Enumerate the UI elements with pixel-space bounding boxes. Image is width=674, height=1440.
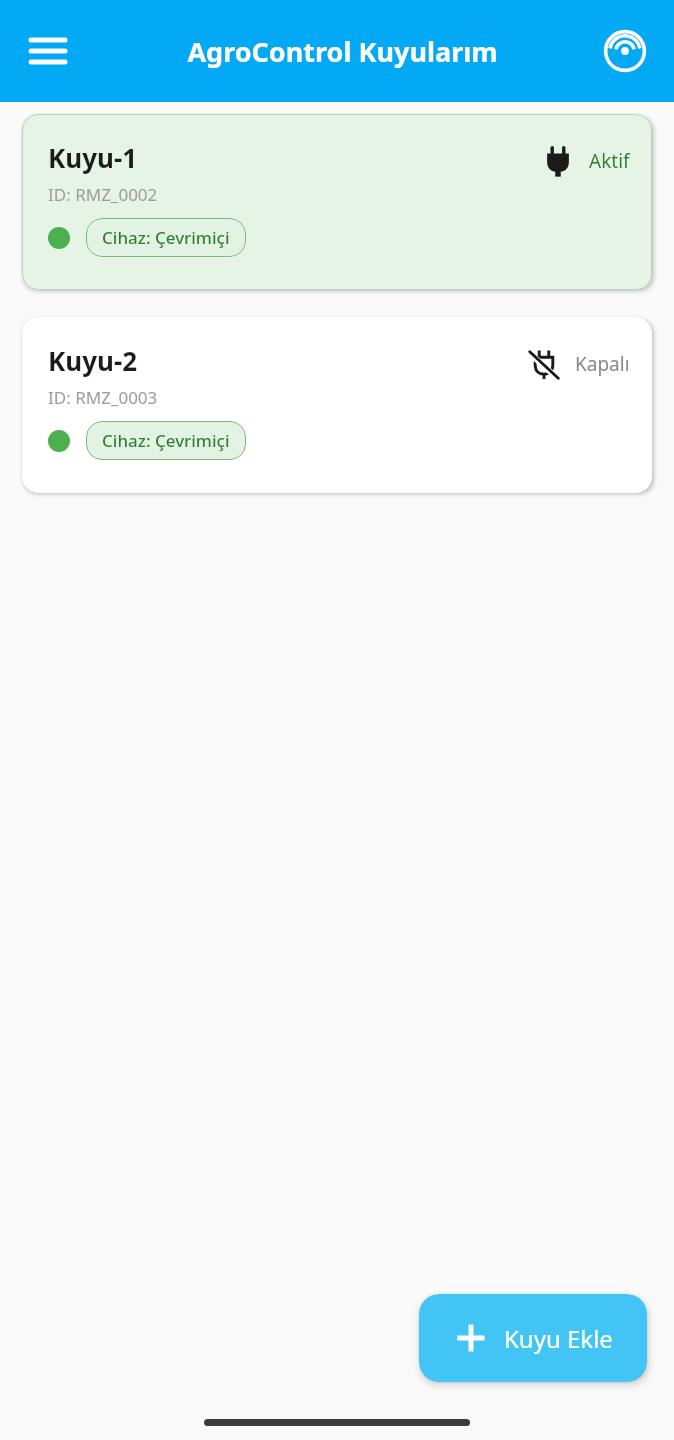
button[interactable]: Aktif [22,114,652,290]
button[interactable]: Cihaz: Çevrimiçi [86,218,246,257]
staticText: Aktif [589,148,630,174]
staticText: ID: RMZ_0002 [48,183,158,206]
staticText: ID: RMZ_0003 [48,386,158,409]
staticText: Kuyu-1 [48,140,138,175]
button[interactable]: Connection status [594,20,656,82]
staticText: AgroControl Kuyularım [187,33,498,70]
staticText: Cihaz: Çevrimiçi [102,429,230,452]
button[interactable]: Kuyu Ekle [419,1294,647,1382]
staticText: Kuyu Ekle [504,1322,613,1355]
button[interactable]: Kapalı [22,317,652,493]
staticText: Kuyu-2 [48,343,138,378]
button[interactable]: Menu [18,21,78,81]
button[interactable]: Cihaz: Çevrimiçi [86,421,246,460]
staticText: Kapalı [575,351,630,377]
staticText: Cihaz: Çevrimiçi [102,226,230,249]
